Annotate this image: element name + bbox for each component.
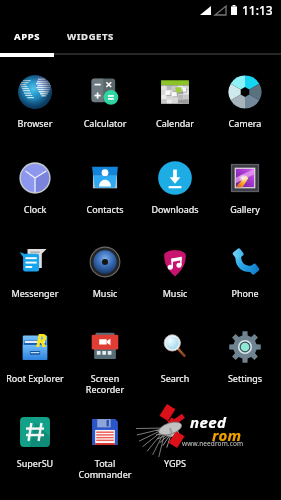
staticText: APPS: [14, 30, 41, 43]
button[interactable]: Downloads: [140, 156, 210, 228]
button[interactable]: Music: [70, 240, 140, 312]
staticText: Phone: [211, 287, 279, 299]
button[interactable]: Screen Recorder: [70, 325, 140, 397]
staticText: www.needrom.com: [182, 439, 244, 448]
staticText: Total Commander: [71, 457, 139, 480]
staticText: Root Explorer: [1, 372, 69, 384]
staticText: Contacts: [71, 203, 139, 215]
staticText: Music: [141, 287, 209, 299]
button[interactable]: Calendar: [140, 70, 210, 142]
button[interactable]: Phone: [210, 240, 280, 312]
button[interactable]: YGPS: [140, 410, 210, 482]
staticText: rom: [212, 425, 242, 445]
staticText: Settings: [211, 372, 279, 384]
staticText: Calculator: [71, 117, 139, 129]
button[interactable]: Total Commander: [70, 410, 140, 482]
button[interactable]: Browser: [0, 70, 70, 142]
button[interactable]: Camera: [210, 70, 280, 142]
staticText: Messenger: [1, 287, 69, 299]
button[interactable]: Search: [140, 325, 210, 397]
button[interactable]: APPS: [0, 22, 54, 53]
button[interactable]: Calculator: [70, 70, 140, 142]
button[interactable]: Clock: [0, 156, 70, 228]
button[interactable]: WIDGETS: [54, 22, 126, 53]
staticText: Search: [141, 372, 209, 384]
button[interactable]: Music: [140, 240, 210, 312]
button[interactable]: SuperSU: [0, 410, 70, 482]
button[interactable]: Settings: [210, 325, 280, 397]
button[interactable]: Contacts: [70, 156, 140, 228]
staticText: Music: [71, 287, 139, 299]
button[interactable]: Messenger: [0, 240, 70, 312]
staticText: 11:13: [242, 2, 273, 18]
staticText: WIDGETS: [67, 30, 114, 43]
staticText: Camera: [211, 117, 279, 129]
staticText: Clock: [1, 203, 69, 215]
staticText: SuperSU: [1, 457, 69, 469]
staticText: Browser: [1, 117, 69, 129]
staticText: need: [190, 412, 227, 432]
staticText: Calendar: [141, 117, 209, 129]
button[interactable]: Gallery: [210, 156, 280, 228]
staticText: Gallery: [211, 203, 279, 215]
staticText: R: [36, 329, 47, 352]
staticText: Downloads: [141, 203, 209, 215]
button[interactable]: R: [0, 325, 70, 397]
staticText: Screen Recorder: [71, 372, 139, 395]
staticText: YGPS: [141, 457, 209, 469]
